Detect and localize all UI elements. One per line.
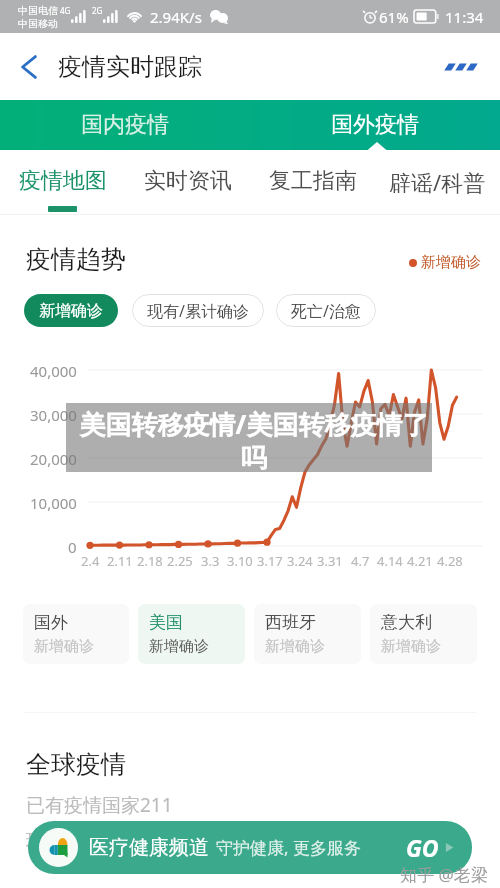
button[interactable]: 实时资讯 <box>125 150 250 214</box>
button[interactable]: 国外疫情 <box>250 100 500 150</box>
staticText: 2.94K/s <box>150 7 202 27</box>
button[interactable]: 西班牙 <box>254 604 361 664</box>
staticText: GO <box>406 832 439 863</box>
button[interactable]: 医疗健康频道 <box>28 821 472 874</box>
staticText: 守护健康, 更多服务 <box>216 836 361 859</box>
staticText: 西班牙 <box>265 612 316 633</box>
staticText: 现有确诊2073610，累计确诊3401529 <box>26 827 350 853</box>
staticText: 国外疫情 <box>331 111 419 139</box>
staticText: 医疗健康频道 <box>89 835 209 860</box>
staticText: 新增确诊 <box>265 637 325 656</box>
staticText: 3.10 <box>227 552 253 570</box>
staticText: 3.24 <box>287 552 313 570</box>
staticText: 4.21 <box>407 552 433 570</box>
staticText: 已有疫情国家211 <box>26 792 173 818</box>
staticText: 新增确诊 <box>381 637 441 656</box>
staticText: 30,000 <box>30 405 77 425</box>
staticText: 10,000 <box>30 493 77 513</box>
button[interactable]: More options <box>433 33 489 100</box>
staticText: 3.31 <box>317 552 343 570</box>
button[interactable]: 现有/累计确诊 <box>132 294 264 327</box>
staticText: 新增确诊 <box>34 637 94 656</box>
staticText: 全球疫情 <box>26 749 126 780</box>
button[interactable]: Back <box>0 33 58 100</box>
staticText: 辟谣/科普 <box>389 167 486 197</box>
staticText: 现有/累计确诊 <box>147 300 249 322</box>
staticText: 11:34 <box>445 7 484 27</box>
staticText: 美国 <box>149 612 183 633</box>
staticText: 2.4 <box>81 552 100 570</box>
staticText: 新增确诊 <box>39 301 103 321</box>
staticText: 3.3 <box>201 552 220 570</box>
button[interactable]: 疫情地图 <box>0 150 125 214</box>
staticText: 复工指南 <box>269 167 357 195</box>
button[interactable]: 国外 <box>23 604 129 664</box>
staticText: 4.14 <box>377 552 403 570</box>
button[interactable]: 美国 <box>138 604 245 664</box>
staticText: 疫情趋势 <box>26 244 126 275</box>
staticText: 疫情地图 <box>19 167 107 195</box>
staticText: 4G <box>60 5 71 16</box>
staticText: 4.28 <box>437 552 463 570</box>
staticText: 国内疫情 <box>81 111 169 139</box>
staticText: 20,000 <box>30 449 77 469</box>
button[interactable]: 辟谣/科普 <box>375 150 500 214</box>
staticText: 2.11 <box>107 552 133 570</box>
staticText: 中国移动 <box>18 17 58 30</box>
staticText: 实时资讯 <box>144 167 232 195</box>
button[interactable]: 新增确诊 <box>24 294 118 327</box>
staticText: 4.7 <box>351 552 370 570</box>
staticText: 2G <box>92 5 103 16</box>
staticText: 知乎 @老梁 <box>400 863 488 886</box>
staticText: 3.17 <box>257 552 283 570</box>
staticText: 0 <box>68 537 77 557</box>
staticText: 新增确诊 <box>149 637 209 656</box>
staticText: 40,000 <box>30 361 77 381</box>
staticText: 2.25 <box>167 552 193 570</box>
staticText: 国外 <box>34 612 68 633</box>
button[interactable]: 国内疫情 <box>0 100 250 150</box>
button[interactable]: 死亡/治愈 <box>276 294 376 327</box>
staticText: 疫情实时跟踪 <box>58 52 202 82</box>
staticText: 61% <box>379 7 409 27</box>
staticText: 意大利 <box>381 612 432 633</box>
staticText: 新增确诊 <box>421 253 481 272</box>
staticText: 死亡/治愈 <box>291 300 361 322</box>
staticText: 美国转移疫情/美国转移疫情了吗 <box>76 406 432 472</box>
staticText: 2.18 <box>137 552 163 570</box>
button[interactable]: 复工指南 <box>250 150 375 214</box>
button[interactable]: 意大利 <box>370 604 477 664</box>
staticText: 中国电信 <box>18 4 58 17</box>
